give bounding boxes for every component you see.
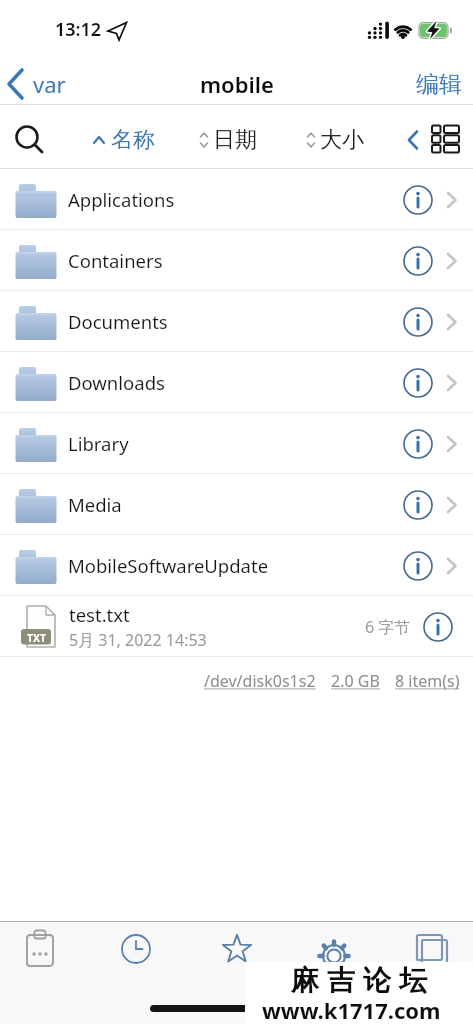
staticText: Media bbox=[68, 492, 122, 517]
button[interactable]: TXT bbox=[0, 596, 473, 657]
button[interactable]: Containers bbox=[0, 230, 473, 291]
staticText: /dev/disk0s1s2 bbox=[204, 670, 316, 692]
button[interactable]: Library bbox=[0, 413, 473, 474]
button[interactable] bbox=[12, 122, 48, 158]
button[interactable] bbox=[114, 927, 158, 971]
staticText: TXT bbox=[27, 631, 47, 645]
button[interactable]: Media bbox=[0, 474, 473, 535]
staticText: mobile bbox=[200, 69, 274, 99]
staticText: 编辑 bbox=[416, 70, 462, 99]
button[interactable] bbox=[402, 129, 424, 151]
staticText: MobileSoftwareUpdate bbox=[68, 553, 269, 578]
staticText: var bbox=[33, 69, 66, 99]
button[interactable] bbox=[215, 927, 259, 971]
staticText: 名称 bbox=[111, 126, 155, 154]
button[interactable]: /dev/disk0s1s2 bbox=[204, 670, 316, 692]
button[interactable]: 日期 bbox=[199, 126, 257, 154]
button[interactable]: 名称 bbox=[92, 126, 155, 154]
button[interactable]: 2.0 GB bbox=[331, 670, 380, 692]
button[interactable] bbox=[312, 927, 356, 971]
button[interactable]: var bbox=[0, 67, 66, 101]
staticText: 8 item(s) bbox=[395, 670, 460, 692]
staticText: 麻吉论坛 bbox=[287, 963, 431, 998]
button[interactable] bbox=[401, 549, 435, 583]
button[interactable]: MobileSoftwareUpdate bbox=[0, 535, 473, 596]
staticText: test.txt bbox=[69, 602, 130, 627]
button[interactable] bbox=[401, 427, 435, 461]
button[interactable]: 8 item(s) bbox=[395, 670, 460, 692]
button[interactable] bbox=[401, 183, 435, 217]
button[interactable] bbox=[18, 927, 62, 971]
staticText: www.k1717.com bbox=[262, 995, 441, 1021]
button[interactable] bbox=[421, 610, 455, 644]
button[interactable]: Applications bbox=[0, 169, 473, 230]
staticText: Library bbox=[68, 431, 129, 456]
button[interactable] bbox=[401, 305, 435, 339]
staticText: Applications bbox=[68, 187, 175, 212]
staticText: 6 字节 bbox=[365, 616, 411, 638]
button[interactable]: Downloads bbox=[0, 352, 473, 413]
staticText: Downloads bbox=[68, 370, 165, 395]
staticText: 日期 bbox=[213, 126, 257, 154]
button[interactable] bbox=[430, 124, 462, 156]
staticText: 13:12 bbox=[55, 17, 102, 42]
staticText: Documents bbox=[68, 309, 168, 334]
staticText: 2.0 GB bbox=[331, 670, 380, 692]
button[interactable] bbox=[401, 488, 435, 522]
button[interactable]: 编辑 bbox=[416, 70, 462, 99]
button[interactable] bbox=[401, 244, 435, 278]
staticText: 大小 bbox=[320, 126, 364, 154]
button[interactable]: Documents bbox=[0, 291, 473, 352]
button[interactable] bbox=[401, 366, 435, 400]
staticText: Containers bbox=[68, 248, 163, 273]
button[interactable] bbox=[409, 927, 453, 971]
button[interactable]: 大小 bbox=[306, 126, 364, 154]
staticText: 5月 31, 2022 14:53 bbox=[69, 629, 207, 651]
